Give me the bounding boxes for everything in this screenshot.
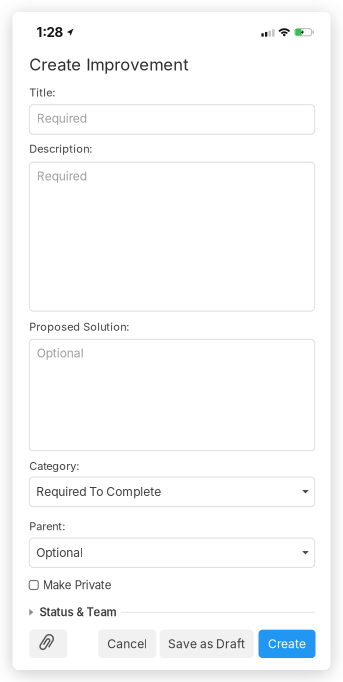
staticText: Cancel [107,637,147,651]
staticText: Required [37,111,87,126]
staticText: 1:28 [36,24,63,40]
staticText: Make Private [43,578,112,592]
staticText: Save as Draft [168,637,245,651]
staticText: Category: [29,459,79,473]
staticText: Create Improvement [29,54,188,74]
button[interactable]: Required To Complete [29,477,315,506]
staticText: Create [268,637,306,651]
button[interactable]: Save as Draft [160,630,254,658]
button[interactable]: Optional [29,339,315,451]
staticText: Optional [37,346,84,360]
button[interactable]: Cancel [98,630,156,658]
button[interactable]: Required [29,162,315,311]
staticText: Required [37,169,87,183]
staticText: Status & Team [39,605,116,619]
button[interactable]: Required [29,105,315,134]
staticText: Proposed Solution: [29,320,129,333]
staticText: Parent: [29,520,65,533]
button[interactable]: Create [258,630,315,658]
staticText: Title: [29,86,55,99]
staticText: Required To Complete [36,484,161,499]
button[interactable]: Optional [29,538,315,567]
staticText: Optional [36,545,83,560]
staticText: Description: [29,142,92,155]
button[interactable]: Status & Team [17,605,326,619]
button[interactable]: Attach file [29,630,67,658]
button[interactable]: Make Private [17,578,112,592]
